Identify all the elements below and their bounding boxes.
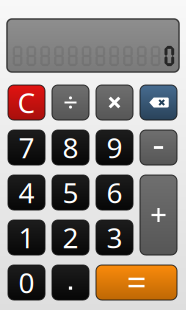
button[interactable]: Divide — [52, 85, 89, 120]
staticText: C — [17, 84, 35, 121]
button[interactable]: 3 — [96, 220, 133, 255]
staticText: 2 — [62, 219, 78, 256]
staticText: 7 — [18, 129, 34, 166]
button[interactable]: 6 — [96, 175, 133, 210]
staticText: 5 — [62, 174, 78, 211]
button[interactable]: 5 — [52, 175, 89, 210]
staticText: 8 — [62, 129, 78, 166]
staticText: 6 — [106, 174, 122, 211]
button[interactable]: 1 — [8, 220, 45, 255]
staticText: 0 — [18, 264, 34, 301]
button[interactable]: Minus — [140, 130, 177, 165]
staticText: 1 — [18, 219, 34, 256]
button[interactable]: C — [8, 85, 45, 120]
button[interactable]: 7 — [8, 130, 45, 165]
button[interactable]: 2 — [52, 220, 89, 255]
staticText: 9 — [106, 129, 122, 166]
button[interactable]: 8 — [52, 130, 89, 165]
button[interactable]: 0 — [8, 265, 45, 300]
button[interactable]: Delete — [140, 85, 177, 120]
button[interactable]: Multiply — [96, 85, 133, 120]
button[interactable]: Decimal point — [52, 265, 89, 300]
button[interactable]: 4 — [8, 175, 45, 210]
staticText: 4 — [18, 174, 34, 211]
staticText: 3 — [106, 219, 122, 256]
button[interactable]: Equals — [96, 265, 177, 300]
button[interactable]: 9 — [96, 130, 133, 165]
button[interactable]: Plus — [140, 175, 177, 255]
